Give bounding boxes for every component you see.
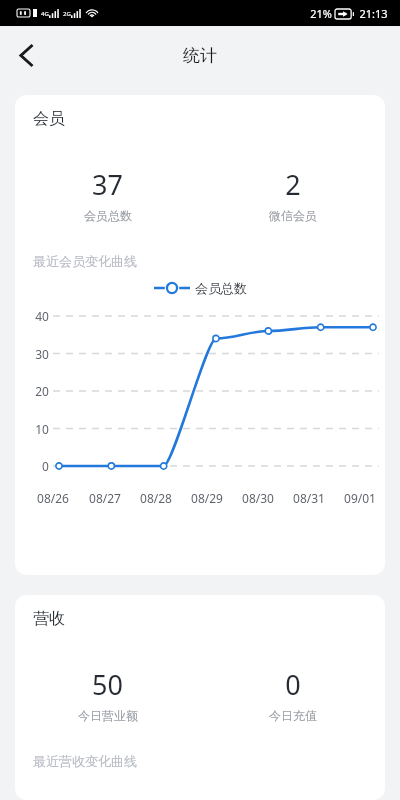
staticText: 微信会员 bbox=[269, 208, 317, 223]
button[interactable]: 37 bbox=[15, 166, 200, 223]
staticText: 0 bbox=[285, 666, 301, 703]
staticText: 今日营业额 bbox=[78, 708, 138, 723]
staticText: 0 bbox=[42, 458, 49, 474]
staticText: 今日充值 bbox=[269, 708, 317, 723]
button[interactable]: 2 bbox=[200, 166, 385, 223]
staticText: 4G bbox=[41, 10, 49, 18]
staticText: 21% bbox=[310, 6, 332, 21]
staticText: 30 bbox=[35, 346, 49, 362]
staticText: 会员总数 bbox=[195, 280, 247, 296]
button[interactable]: 50 bbox=[15, 666, 200, 723]
staticText: 08/26 bbox=[37, 490, 69, 506]
staticText: 08/28 bbox=[140, 490, 172, 506]
staticText: 37 bbox=[92, 166, 123, 203]
staticText: 08/30 bbox=[242, 490, 274, 506]
staticText: 2 bbox=[285, 166, 301, 203]
staticText: 10 bbox=[35, 421, 49, 437]
button[interactable]: Back bbox=[4, 33, 48, 77]
staticText: 08/31 bbox=[293, 490, 325, 506]
staticText: 统计 bbox=[183, 45, 217, 66]
staticText: 21:13 bbox=[359, 6, 388, 21]
button[interactable]: 会员总数 bbox=[15, 280, 385, 296]
staticText: 2G bbox=[63, 10, 71, 18]
staticText: 营收 bbox=[33, 609, 65, 629]
staticText: 08/29 bbox=[191, 490, 223, 506]
staticText: 会员总数 bbox=[84, 208, 132, 223]
staticText: 08/27 bbox=[89, 490, 121, 506]
staticText: 会员 bbox=[33, 109, 65, 129]
staticText: 20 bbox=[35, 383, 49, 399]
staticText: 最近会员变化曲线 bbox=[33, 253, 137, 269]
staticText: 09/01 bbox=[344, 490, 376, 506]
button[interactable]: 0 bbox=[200, 666, 385, 723]
staticText: 40 bbox=[35, 308, 49, 324]
staticText: 50 bbox=[92, 666, 123, 703]
staticText: 最近营收变化曲线 bbox=[33, 753, 137, 769]
